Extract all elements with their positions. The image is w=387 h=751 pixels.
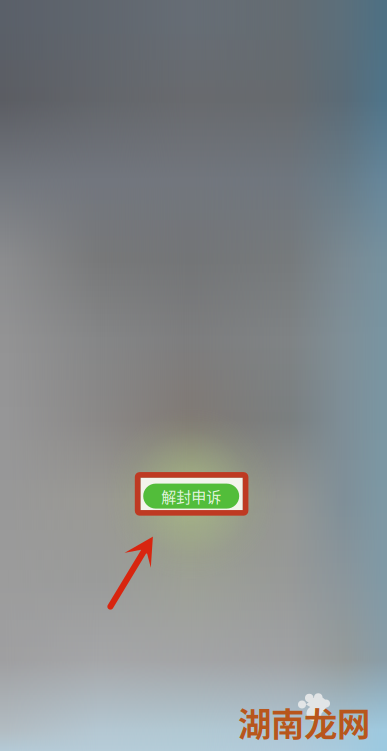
staticText: 湖南龙网 [238,698,370,746]
staticText: 解封申诉 [161,485,221,507]
button[interactable]: 解封申诉 [143,484,239,509]
